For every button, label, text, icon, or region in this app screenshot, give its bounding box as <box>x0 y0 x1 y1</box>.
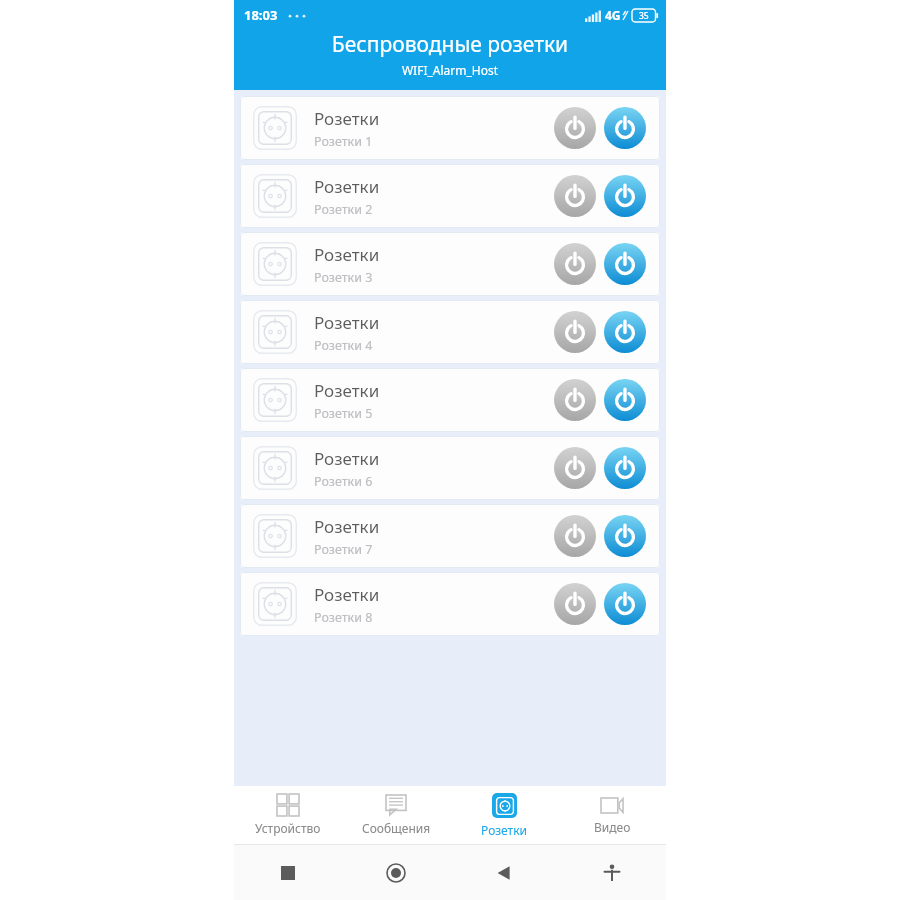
staticText: Розетки 5 <box>314 405 373 422</box>
staticText: Видео <box>594 819 631 835</box>
button[interactable]: Сообщения <box>342 786 450 844</box>
staticText: Розетки <box>314 515 380 538</box>
staticText: Розетки 3 <box>314 269 373 286</box>
staticText: Розетки <box>314 379 380 402</box>
staticText: Розетки <box>314 583 380 606</box>
staticText: Розетки <box>314 447 380 470</box>
button[interactable]: Розетки <box>450 786 558 844</box>
button[interactable]: Turn off <box>554 583 596 625</box>
button[interactable]: Accessibility <box>594 855 630 891</box>
staticText: Сообщения <box>362 820 431 836</box>
staticText: Беспроводные розетки <box>234 30 666 59</box>
button[interactable]: Turn off <box>554 175 596 217</box>
button[interactable]: Home <box>378 855 414 891</box>
button[interactable]: Розетки <box>240 368 660 432</box>
button[interactable]: Turn off <box>554 107 596 149</box>
button[interactable]: Turn off <box>554 243 596 285</box>
button[interactable]: Turn on <box>604 107 646 149</box>
staticText: 35 <box>639 10 649 22</box>
button[interactable]: Розетки <box>240 164 660 228</box>
button[interactable]: Turn on <box>604 447 646 489</box>
button[interactable]: Turn off <box>554 515 596 557</box>
staticText: Розетки 2 <box>314 201 373 218</box>
button[interactable]: Розетки <box>240 436 660 500</box>
button[interactable]: Устройство <box>234 786 342 844</box>
button[interactable]: Turn on <box>604 583 646 625</box>
staticText: Розетки <box>314 243 380 266</box>
staticText: Розетки <box>314 175 380 198</box>
staticText: Розетки <box>481 822 528 838</box>
staticText: Розетки 7 <box>314 541 373 558</box>
staticText: Розетки 4 <box>314 337 373 354</box>
staticText: Розетки 6 <box>314 473 373 490</box>
button[interactable]: Turn off <box>554 379 596 421</box>
button[interactable]: Turn on <box>604 311 646 353</box>
button[interactable]: Розетки <box>240 300 660 364</box>
button[interactable]: Видео <box>558 786 666 844</box>
button[interactable]: Turn on <box>604 515 646 557</box>
staticText: 4G <box>605 7 621 23</box>
staticText: Розетки <box>314 107 380 130</box>
button[interactable]: Turn off <box>554 447 596 489</box>
button[interactable]: Розетки <box>240 572 660 636</box>
button[interactable]: Back <box>486 855 522 891</box>
staticText: WIFI_Alarm_Host <box>234 62 666 78</box>
button[interactable]: Turn off <box>554 311 596 353</box>
button[interactable]: Recents <box>270 855 306 891</box>
staticText: 18:03 <box>244 6 278 24</box>
button[interactable]: Розетки <box>240 96 660 160</box>
button[interactable]: Розетки <box>240 232 660 296</box>
staticText: Розетки 1 <box>314 133 373 150</box>
button[interactable]: Turn on <box>604 175 646 217</box>
button[interactable]: Turn on <box>604 379 646 421</box>
button[interactable]: Turn on <box>604 243 646 285</box>
button[interactable]: Розетки <box>240 504 660 568</box>
staticText: Розетки <box>314 311 380 334</box>
staticText: Розетки 8 <box>314 609 373 626</box>
staticText: Устройство <box>255 820 321 836</box>
